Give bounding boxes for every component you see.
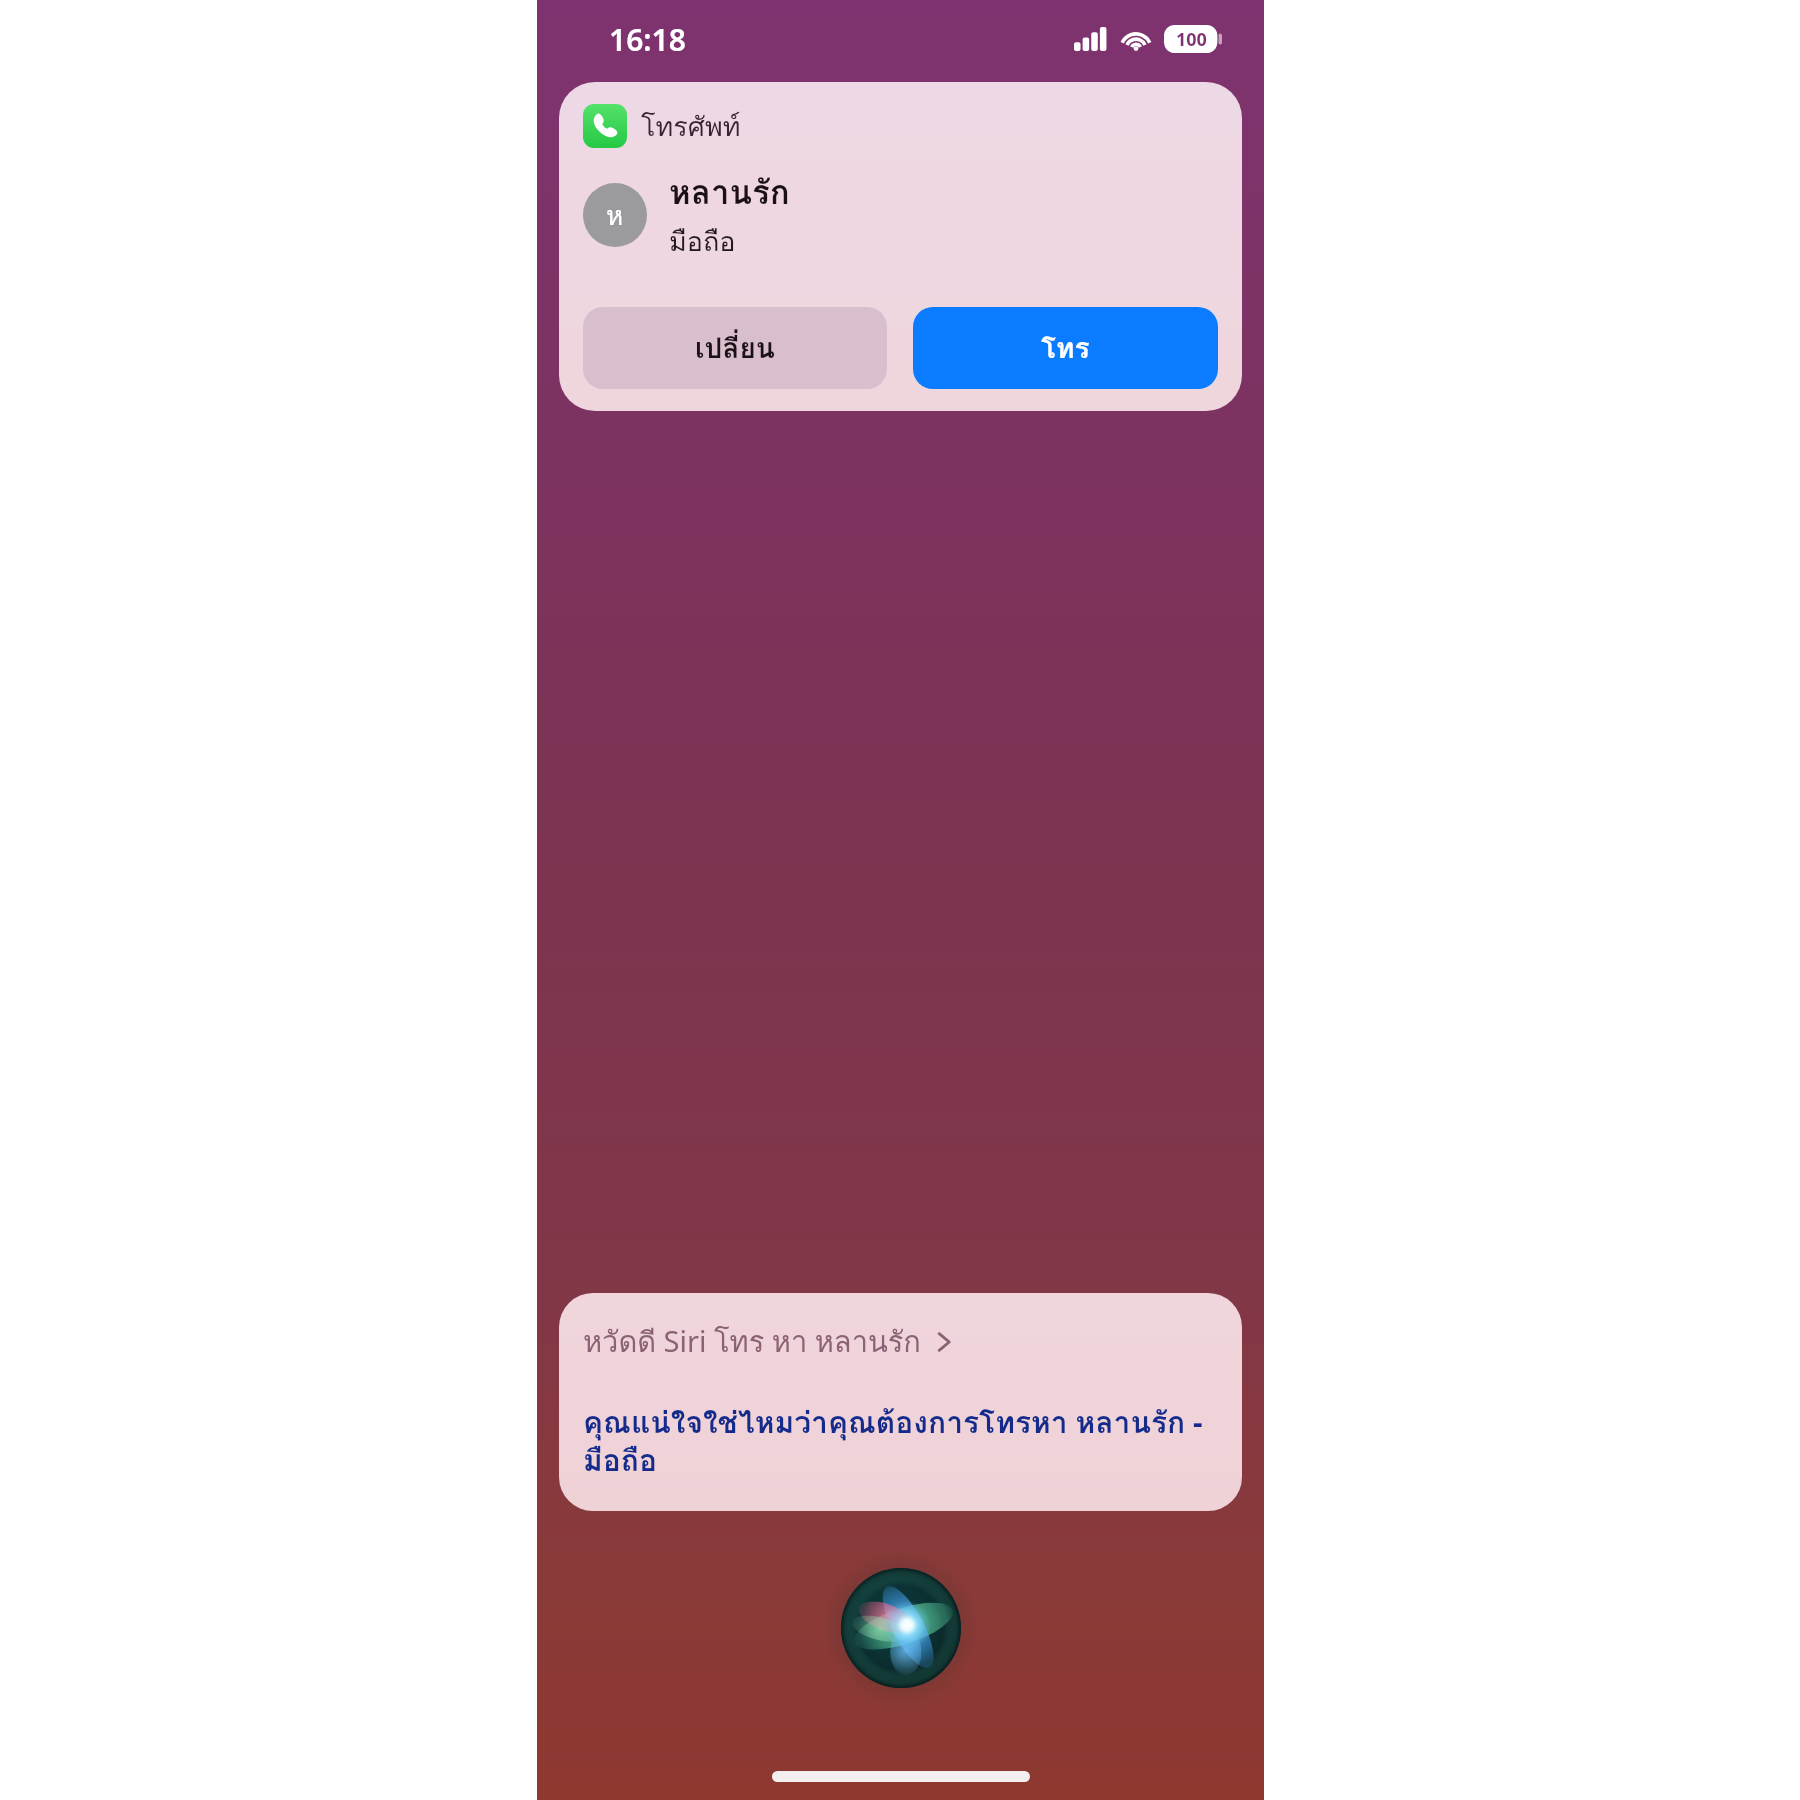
staticText: 100: [1176, 27, 1207, 52]
button[interactable]: เปลี่ยน: [583, 307, 887, 389]
staticText: หลานรัก: [669, 166, 790, 218]
staticText: โทรศัพท์: [641, 105, 741, 148]
button[interactable]: หวัดดี Siri โทร หา หลานรัก: [559, 1293, 1242, 1511]
button[interactable]: Phone app: [559, 82, 1242, 411]
staticText: 16:18: [609, 19, 686, 60]
other: Phone app: [583, 104, 627, 148]
staticText: คุณแน่ใจใช่ไหมว่าคุณต้องการโทรหา หลานรัก…: [583, 1399, 1218, 1485]
staticText: มือถือ: [669, 220, 736, 263]
staticText: หวัดดี Siri โทร หา หลานรัก: [583, 1319, 921, 1365]
staticText: โทร: [1041, 326, 1090, 371]
button[interactable]: โทร: [913, 307, 1218, 389]
staticText: ห: [606, 195, 624, 236]
staticText: เปลี่ยน: [695, 326, 775, 371]
